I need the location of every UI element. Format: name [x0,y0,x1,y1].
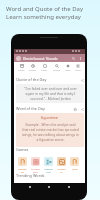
staticText: Search [53,69,61,72]
button[interactable]: App logo [16,56,21,61]
button[interactable]: Anagram [57,157,66,173]
staticText: figurative [41,115,59,120]
button[interactable]: More options [78,56,83,61]
staticText: More [75,69,81,72]
staticText: Wordsearch [31,167,40,173]
button[interactable]: Quiz [70,157,79,170]
staticText: Learn something everyday [6,13,81,21]
staticText: "I've failed over and over and over agai… [24,86,77,101]
button[interactable]: "I've failed over and over and over agai… [16,84,84,103]
staticText: Quiz [72,167,78,170]
staticText: Recent [29,69,37,72]
button[interactable]: Search [53,64,61,72]
staticText: Cards [41,69,48,72]
staticText: Word of the Day [16,106,45,111]
button[interactable]: Stars [65,64,71,72]
button[interactable]: Saved [18,64,25,72]
button[interactable]: Wordsearch [31,157,40,173]
button[interactable]: Hangman [18,157,27,173]
button[interactable]: Cards [41,64,48,72]
staticText: Games [16,147,29,152]
staticText: Saved [18,69,25,72]
staticText: Trending Words [16,173,45,178]
button[interactable]: More [75,64,81,72]
staticText: Brainboost Vocab [23,56,58,62]
button[interactable]: Recent [29,64,37,72]
staticText: Example - When the analyst said that rea… [22,122,79,142]
button[interactable]: Crossword [44,157,53,173]
staticText: Hangman [18,167,27,173]
button[interactable]: Share [80,107,84,111]
staticText: Crossword [44,167,53,173]
button[interactable]: Search [71,56,76,61]
button[interactable]: figurative [16,113,84,147]
staticText: Anagram [57,167,66,173]
staticText: Quote of the Day [16,77,47,82]
button[interactable]: Share [80,78,84,82]
staticText: Word and Quote of the Day [6,5,84,13]
button[interactable]: Speak [73,107,77,111]
staticText: Stars [65,69,71,72]
